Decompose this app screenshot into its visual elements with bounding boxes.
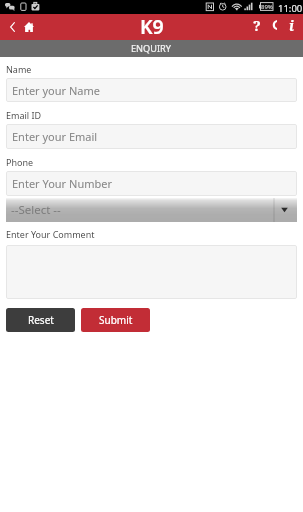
button[interactable]: Info: [282, 16, 300, 34]
staticText: Enter your Email: [12, 129, 98, 144]
staticText: 11:00: [278, 2, 303, 15]
staticText: Enter Your Comment: [6, 228, 95, 240]
button[interactable]: Enter your Name: [6, 78, 297, 102]
staticText: 89%: [261, 3, 273, 11]
button[interactable]: Select: [6, 198, 297, 222]
staticText: Reset: [28, 313, 54, 327]
staticText: K9: [140, 13, 164, 39]
staticText: Name: [6, 63, 32, 75]
button[interactable]: Enter Your Comment: [6, 245, 297, 299]
staticText: Enter Your Number: [12, 176, 112, 191]
staticText: ENQUIRY: [131, 42, 172, 55]
button[interactable]: Back: [1, 15, 23, 39]
button[interactable]: Enter Your Number: [6, 171, 297, 196]
staticText: ?: [253, 16, 261, 34]
button[interactable]: Home: [24, 22, 34, 32]
button[interactable]: Submit: [81, 308, 150, 332]
staticText: i: [289, 16, 294, 34]
staticText: Submit: [99, 313, 133, 327]
button[interactable]: Help: [248, 16, 266, 34]
staticText: --Select --: [11, 202, 61, 218]
staticText: Enter your Name: [12, 83, 100, 98]
staticText: Email ID: [6, 109, 42, 121]
button[interactable]: Enter your Email: [6, 124, 297, 149]
button[interactable]: Call: [265, 16, 283, 34]
staticText: Phone: [6, 156, 34, 168]
button[interactable]: Reset: [6, 308, 75, 332]
